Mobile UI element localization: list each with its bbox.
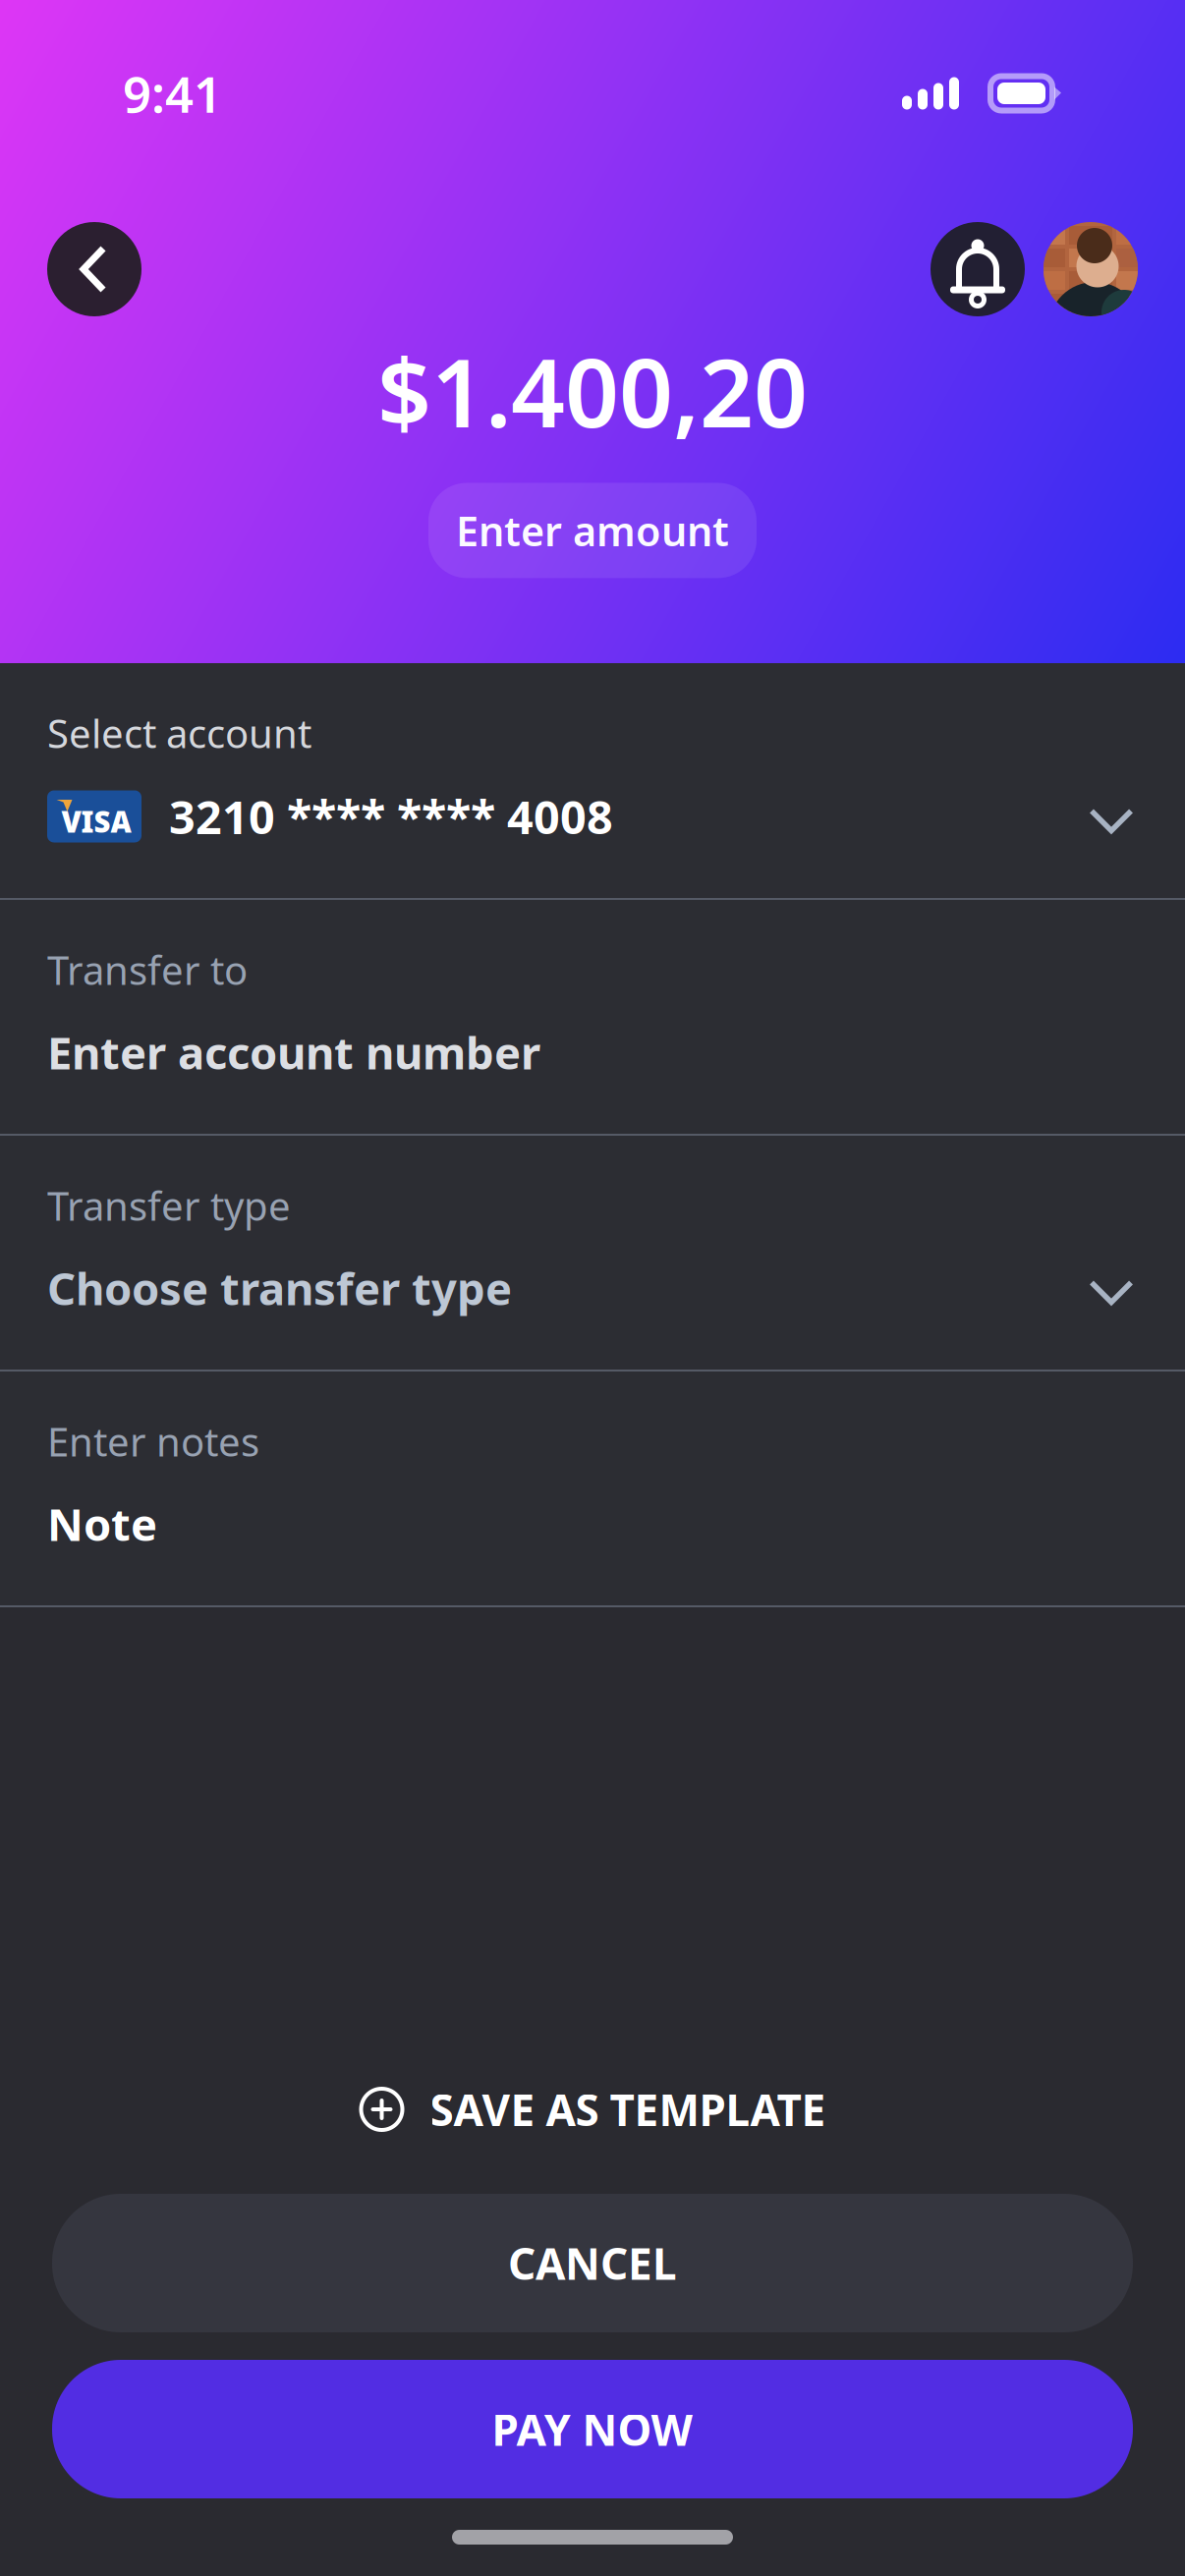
staticText: Select account [47, 707, 311, 759]
staticText: VISA [61, 802, 131, 840]
staticText: Transfer to [47, 944, 248, 996]
button[interactable]: PAY NOW [52, 2360, 1133, 2498]
staticText: Note [47, 1494, 157, 1553]
staticText: SAVE AS TEMPLATE [430, 2081, 826, 2138]
button[interactable]: Transfer type [0, 1136, 1185, 1370]
button[interactable]: Transfer to [0, 900, 1185, 1134]
staticText: Transfer type [47, 1179, 291, 1232]
button[interactable]: Notifications [931, 222, 1025, 316]
staticText: CANCEL [508, 2234, 677, 2292]
staticText: PAY NOW [492, 2400, 693, 2458]
staticText: Enter notes [47, 1415, 259, 1467]
staticText: 3210 **** **** 4008 [169, 786, 613, 847]
staticText: Enter amount [456, 504, 729, 557]
button[interactable]: Profile [1044, 222, 1138, 316]
staticText: Choose transfer type [47, 1258, 512, 1318]
staticText: $1.400,20 [377, 328, 808, 453]
staticText: 9:41 [123, 60, 222, 126]
button[interactable]: SAVE AS TEMPLATE [0, 2064, 1185, 2155]
button[interactable]: Enter amount [428, 483, 757, 578]
button[interactable]: Back [47, 222, 141, 316]
button[interactable]: Enter notes [0, 1372, 1185, 1605]
button[interactable]: Select account [0, 663, 1185, 898]
button[interactable]: CANCEL [52, 2194, 1133, 2332]
staticText: Enter account number [47, 1023, 540, 1082]
